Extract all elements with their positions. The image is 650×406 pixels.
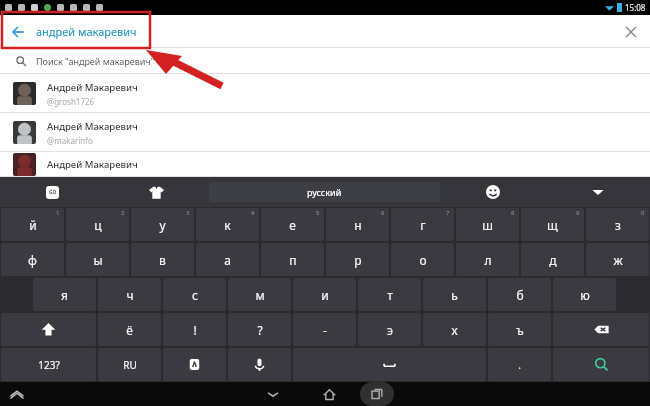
button[interactable]: . xyxy=(488,348,551,381)
staticText: с xyxy=(192,287,198,303)
button[interactable]: Home xyxy=(312,382,346,406)
staticText: 123? xyxy=(38,358,60,372)
button[interactable]: д xyxy=(521,243,584,276)
button[interactable]: б xyxy=(488,278,551,311)
staticText: ф xyxy=(28,252,37,268)
staticText: ь xyxy=(451,287,458,303)
button[interactable]: Андрей Макаревич xyxy=(0,74,650,113)
button[interactable]: Emoji xyxy=(440,177,545,207)
staticText: м xyxy=(255,287,265,303)
button[interactable]: Search xyxy=(553,348,649,381)
staticText: 9 xyxy=(576,209,580,217)
staticText: л xyxy=(484,252,492,268)
staticText: з xyxy=(615,217,621,233)
button[interactable]: Андрей Макаревич xyxy=(0,113,650,152)
button[interactable]: Shift xyxy=(1,313,96,346)
staticText: русский xyxy=(307,186,342,198)
button[interactable]: ы xyxy=(66,243,129,276)
staticText: - xyxy=(323,322,327,338)
staticText: RU xyxy=(123,358,137,372)
button[interactable]: у xyxy=(131,208,194,241)
button[interactable]: русский xyxy=(209,182,440,202)
staticText: ю xyxy=(580,287,590,303)
button[interactable]: п xyxy=(261,243,324,276)
button[interactable]: л xyxy=(456,243,519,276)
button[interactable]: ш xyxy=(456,208,519,241)
staticText: 0 xyxy=(641,209,645,217)
button[interactable]: ж xyxy=(586,243,649,276)
button[interactable]: ю xyxy=(553,278,616,311)
staticText: й xyxy=(29,217,37,233)
staticText: 2 xyxy=(121,209,125,217)
staticText: 4 xyxy=(251,209,255,217)
staticText: 3 xyxy=(186,209,190,217)
button[interactable]: 123? xyxy=(1,348,96,381)
button[interactable]: Space xyxy=(293,348,486,381)
staticText: 1 xyxy=(56,209,60,217)
button[interactable]: Поиск "андрей макаревич" xyxy=(0,48,650,74)
staticText: о xyxy=(419,252,427,268)
button[interactable]: Go xyxy=(0,177,104,207)
button[interactable]: ч xyxy=(98,278,161,311)
staticText: Андрей Макаревич xyxy=(47,81,138,94)
button[interactable]: а xyxy=(196,243,259,276)
button[interactable]: о xyxy=(391,243,454,276)
button[interactable]: ? xyxy=(228,313,291,346)
button[interactable]: ъ xyxy=(488,313,551,346)
other: Back xyxy=(10,24,26,40)
button[interactable]: Recents xyxy=(360,382,394,406)
button[interactable]: ф xyxy=(1,243,64,276)
button[interactable]: с xyxy=(163,278,226,311)
button[interactable]: э xyxy=(358,313,421,346)
staticText: у xyxy=(159,217,166,233)
button[interactable]: Language xyxy=(163,348,226,381)
staticText: 6 xyxy=(381,209,385,217)
button[interactable]: м xyxy=(228,278,291,311)
button[interactable]: ! xyxy=(163,313,226,346)
button[interactable]: Clear xyxy=(622,23,640,41)
button[interactable]: й xyxy=(1,208,64,241)
button[interactable]: Андрей Макаревич xyxy=(0,152,650,177)
staticText: ц xyxy=(94,217,102,233)
button[interactable]: е xyxy=(261,208,324,241)
staticText: е xyxy=(289,217,296,233)
button[interactable]: я xyxy=(33,278,96,311)
button[interactable]: ц xyxy=(66,208,129,241)
staticText: 7 xyxy=(446,209,450,217)
staticText: д xyxy=(549,252,557,268)
button[interactable]: з xyxy=(586,208,649,241)
staticText: п xyxy=(289,252,297,268)
button[interactable]: к xyxy=(196,208,259,241)
staticText: . xyxy=(518,358,521,372)
staticText: р xyxy=(354,252,362,268)
button[interactable]: Theme xyxy=(104,177,209,207)
staticText: @makarinfo xyxy=(47,135,93,146)
button[interactable]: RU xyxy=(98,348,161,381)
button[interactable]: Voice input xyxy=(228,348,291,381)
button[interactable]: р xyxy=(326,243,389,276)
staticText: ч xyxy=(126,287,134,303)
staticText: к xyxy=(224,217,231,233)
button[interactable]: н xyxy=(326,208,389,241)
staticText: Андрей Макаревич xyxy=(47,120,138,133)
staticText: ш xyxy=(482,217,493,233)
button[interactable]: ё xyxy=(98,313,161,346)
staticText: 15:08 xyxy=(625,2,646,13)
staticText: х xyxy=(451,322,458,338)
button[interactable]: Back xyxy=(256,382,290,406)
button[interactable]: г xyxy=(391,208,454,241)
button[interactable]: Hide keyboard xyxy=(545,177,650,207)
button[interactable]: в xyxy=(131,243,194,276)
button[interactable]: Back xyxy=(0,15,650,48)
button[interactable]: и xyxy=(293,278,356,311)
button[interactable]: ь xyxy=(423,278,486,311)
button[interactable]: Backspace xyxy=(553,313,649,346)
button[interactable]: Menu xyxy=(8,385,26,403)
button[interactable]: т xyxy=(358,278,421,311)
button[interactable]: х xyxy=(423,313,486,346)
button[interactable]: - xyxy=(293,313,356,346)
staticText: 5 xyxy=(316,209,320,217)
button[interactable]: щ xyxy=(521,208,584,241)
staticText: я xyxy=(61,287,68,303)
staticText: ё xyxy=(126,322,133,338)
